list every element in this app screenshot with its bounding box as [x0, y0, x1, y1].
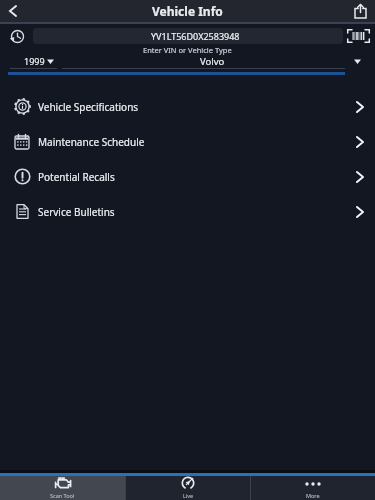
staticText: 1999 [24, 55, 45, 67]
staticText: Service Bulletins [38, 205, 115, 219]
button[interactable] [0, 0, 26, 22]
staticText: Maintenance Schedule [38, 135, 145, 149]
button[interactable]: YV1LT56D0X2583948 [33, 28, 343, 44]
button[interactable]: Live [126, 476, 250, 500]
staticText: Potential Recalls [38, 170, 115, 184]
staticText: Enter VIN or Vehicle Type [143, 45, 232, 55]
button[interactable]: Potential Recalls [0, 159, 375, 194]
button[interactable] [4, 26, 30, 46]
staticText: Vehicle Info [152, 3, 223, 19]
staticText: Scan Tool [50, 492, 75, 499]
staticText: Volvo [200, 55, 225, 68]
button[interactable]: Service Bulletins [0, 194, 375, 229]
button[interactable]: More [251, 476, 375, 500]
button[interactable]: Maintenance Schedule [0, 124, 375, 159]
button[interactable] [344, 27, 372, 45]
staticText: More [306, 492, 320, 499]
button[interactable]: 1999 [8, 54, 54, 68]
staticText: Vehicle Specifications [38, 100, 139, 114]
button[interactable]: Scan Tool [0, 476, 125, 500]
button[interactable]: Vehicle Specifications [0, 89, 375, 124]
staticText: Live [183, 492, 194, 499]
staticText: YV1LT56D0X2583948 [151, 30, 240, 42]
button[interactable] [345, 0, 375, 22]
button[interactable]: Volvo [60, 54, 365, 68]
